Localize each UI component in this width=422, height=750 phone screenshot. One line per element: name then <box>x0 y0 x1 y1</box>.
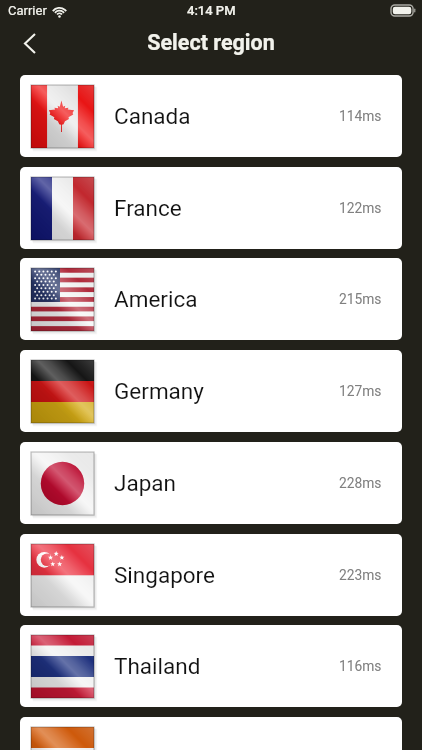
button[interactable]: Thailand <box>20 625 402 707</box>
button[interactable]: Back <box>11 24 49 62</box>
staticText: 228ms <box>339 475 382 491</box>
staticText: America <box>114 286 198 312</box>
button[interactable]: Canada <box>20 75 402 157</box>
staticText: Canada <box>114 103 191 129</box>
staticText: 215ms <box>339 291 382 307</box>
button[interactable]: Japan <box>20 442 402 524</box>
staticText: 127ms <box>339 383 382 399</box>
staticText: Germany <box>114 378 204 404</box>
staticText: Select region <box>147 30 275 55</box>
staticText: Carrier <box>8 3 47 18</box>
staticText: 223ms <box>339 567 382 583</box>
button[interactable]: France <box>20 167 402 249</box>
button[interactable]: India <box>20 717 402 750</box>
button[interactable]: Singapore <box>20 534 402 616</box>
staticText: Japan <box>114 470 176 496</box>
staticText: Singapore <box>114 562 215 588</box>
staticText: Thailand <box>114 653 201 679</box>
staticText: 116ms <box>339 658 382 674</box>
staticText: 122ms <box>339 200 382 216</box>
staticText: 4:14 PM <box>187 3 236 18</box>
staticText: France <box>114 195 182 221</box>
button[interactable]: America <box>20 258 402 340</box>
staticText: 114ms <box>339 108 382 124</box>
button[interactable]: Germany <box>20 350 402 432</box>
